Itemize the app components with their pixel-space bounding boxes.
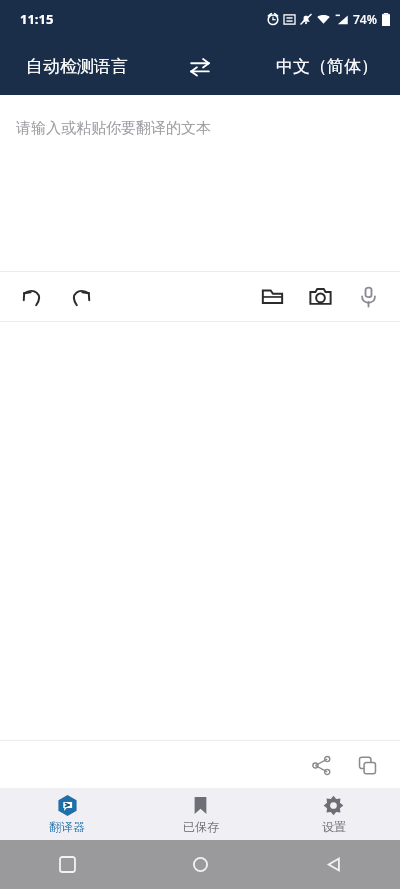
staticText: 请输入或粘贴你要翻译的文本	[16, 119, 211, 138]
button[interactable]: Back	[267, 840, 400, 889]
staticText: 中文（简体）	[276, 56, 378, 77]
button[interactable]: Open file	[248, 272, 296, 320]
staticText: 翻译器	[49, 819, 85, 834]
staticText: 自动检测语言	[26, 56, 128, 77]
button[interactable]: Copy	[344, 742, 390, 788]
button[interactable]: 请输入或粘贴你要翻译的文本	[0, 95, 400, 271]
button[interactable]: 自动检测语言	[0, 38, 173, 95]
button[interactable]: Redo	[56, 272, 104, 320]
staticText: 设置	[322, 819, 346, 834]
button[interactable]: 翻译器	[0, 788, 134, 840]
staticText: 11:15	[20, 10, 54, 28]
button[interactable]: 中文（简体）	[227, 38, 400, 95]
button[interactable]: Home	[134, 840, 267, 889]
button[interactable]: Voice input	[344, 272, 392, 320]
staticText: 已保存	[183, 819, 219, 834]
button[interactable]: Swap languages	[173, 40, 227, 94]
button[interactable]: 设置	[267, 788, 400, 840]
staticText: 74%	[353, 11, 377, 27]
button[interactable]: Share	[298, 742, 344, 788]
button[interactable]: Camera	[296, 272, 344, 320]
button[interactable]: Recent apps	[0, 840, 134, 889]
button[interactable]: 已保存	[134, 788, 267, 840]
button[interactable]: Undo	[8, 272, 56, 320]
